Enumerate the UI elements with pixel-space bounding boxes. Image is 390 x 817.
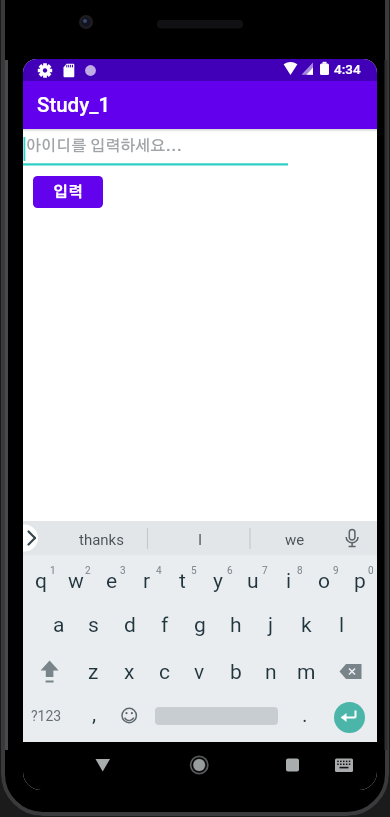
staticText: ?123 bbox=[31, 708, 62, 724]
staticText: b bbox=[230, 660, 242, 685]
staticText: 1 bbox=[50, 565, 56, 577]
staticText: 입력 bbox=[53, 185, 83, 200]
staticText: 4:34 bbox=[334, 61, 361, 77]
staticText: r bbox=[143, 569, 151, 594]
staticText: 6 bbox=[227, 565, 233, 577]
button[interactable]: a bbox=[41, 602, 76, 648]
button[interactable]: w bbox=[58, 558, 93, 604]
button[interactable]: g bbox=[182, 602, 217, 648]
button[interactable] bbox=[23, 131, 288, 167]
staticText: . bbox=[302, 703, 308, 728]
staticText: 7 bbox=[262, 565, 268, 577]
button[interactable] bbox=[327, 649, 375, 695]
button[interactable]: 입력 bbox=[33, 176, 103, 208]
button[interactable]: ?123 bbox=[23, 696, 71, 736]
button[interactable]: e bbox=[94, 558, 129, 604]
staticText: m bbox=[297, 660, 316, 685]
staticText: t bbox=[179, 569, 186, 594]
button[interactable] bbox=[112, 695, 146, 741]
staticText: x bbox=[124, 660, 135, 685]
staticText: y bbox=[213, 569, 223, 594]
button[interactable]: o bbox=[306, 558, 341, 604]
staticText: p bbox=[354, 569, 366, 594]
staticText: Study_1 bbox=[37, 93, 111, 117]
button[interactable] bbox=[23, 81, 377, 129]
staticText: l bbox=[339, 613, 345, 638]
staticText: e bbox=[106, 569, 118, 594]
button[interactable]: j bbox=[253, 602, 288, 648]
button[interactable]: u bbox=[235, 558, 270, 604]
button[interactable]: i bbox=[271, 558, 306, 604]
button[interactable]: r bbox=[129, 558, 164, 604]
staticText: we bbox=[285, 531, 305, 549]
button[interactable]: I bbox=[155, 525, 245, 555]
staticText: h bbox=[230, 613, 242, 638]
button[interactable]: m bbox=[289, 649, 324, 695]
staticText: a bbox=[53, 613, 65, 638]
button[interactable]: we bbox=[250, 525, 340, 555]
button[interactable]: n bbox=[253, 649, 288, 695]
staticText: u bbox=[247, 569, 259, 594]
button[interactable]: x bbox=[112, 649, 147, 695]
staticText: c bbox=[159, 660, 170, 685]
button[interactable]: q bbox=[23, 558, 58, 604]
staticText: g bbox=[194, 613, 206, 638]
button[interactable]: y bbox=[200, 558, 235, 604]
staticText: , bbox=[92, 702, 97, 727]
staticText: 8 bbox=[297, 565, 303, 577]
staticText: d bbox=[124, 613, 136, 638]
button[interactable]: s bbox=[76, 602, 111, 648]
button[interactable]: , bbox=[79, 694, 109, 734]
button[interactable]: v bbox=[182, 649, 217, 695]
button[interactable]: thanks bbox=[51, 525, 151, 555]
button[interactable]: z bbox=[76, 649, 111, 695]
staticText: n bbox=[265, 660, 277, 685]
staticText: w bbox=[68, 569, 84, 594]
button[interactable]: k bbox=[289, 602, 324, 648]
staticText: 5 bbox=[191, 565, 197, 577]
button[interactable] bbox=[337, 521, 369, 555]
staticText: 아이디를 입력하세요... bbox=[26, 139, 182, 155]
staticText: 3 bbox=[120, 565, 126, 577]
staticText: i bbox=[286, 569, 292, 594]
button[interactable]: . bbox=[290, 695, 320, 735]
button[interactable] bbox=[26, 649, 74, 695]
button[interactable]: b bbox=[218, 649, 253, 695]
button[interactable] bbox=[334, 702, 365, 733]
staticText: q bbox=[35, 569, 47, 594]
staticText: s bbox=[88, 613, 99, 638]
staticText: o bbox=[318, 569, 330, 594]
staticText: f bbox=[161, 613, 169, 638]
staticText: v bbox=[194, 660, 205, 685]
staticText: 9 bbox=[333, 565, 339, 577]
staticText: 2 bbox=[85, 565, 91, 577]
staticText: thanks bbox=[79, 531, 124, 549]
button[interactable]: f bbox=[147, 602, 182, 648]
button[interactable]: l bbox=[324, 602, 359, 648]
button[interactable]: h bbox=[218, 602, 253, 648]
button[interactable]: p bbox=[342, 558, 377, 604]
staticText: z bbox=[88, 660, 99, 685]
button[interactable]: t bbox=[165, 558, 200, 604]
staticText: I bbox=[198, 531, 203, 549]
button[interactable]: c bbox=[147, 649, 182, 695]
staticText: 4 bbox=[156, 565, 162, 577]
button[interactable]: d bbox=[112, 602, 147, 648]
staticText: k bbox=[301, 613, 312, 638]
staticText: 0 bbox=[368, 565, 374, 577]
staticText: j bbox=[268, 613, 274, 638]
